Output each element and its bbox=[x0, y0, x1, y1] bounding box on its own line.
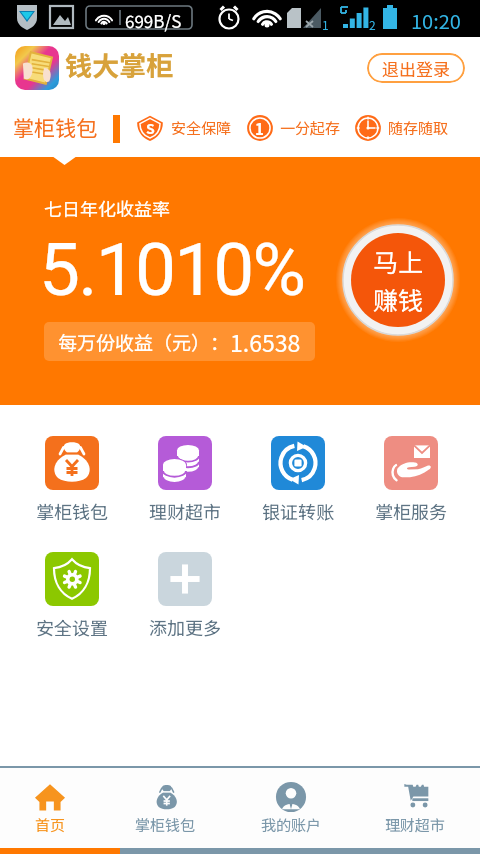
button[interactable]: 理财超市 bbox=[370, 768, 460, 836]
button[interactable]: 添加更多 bbox=[140, 552, 230, 640]
button[interactable]: 退出登录 bbox=[367, 53, 465, 83]
staticText: 掌柜钱包 bbox=[36, 498, 108, 524]
staticText: 退出登录 bbox=[382, 56, 450, 81]
staticText: 我的账户 bbox=[261, 814, 322, 836]
staticText: 1 bbox=[255, 118, 264, 140]
staticText: 5.1010% bbox=[39, 227, 305, 313]
staticText: 首页 bbox=[35, 814, 66, 836]
staticText: 10:20 bbox=[411, 6, 461, 35]
staticText: 添加更多 bbox=[149, 614, 221, 640]
button[interactable]: 安全设置 bbox=[27, 552, 117, 640]
staticText: 银证转账 bbox=[262, 498, 334, 524]
button[interactable]: 掌柜钱包 bbox=[120, 768, 210, 836]
staticText: 2 bbox=[369, 16, 376, 33]
button[interactable]: 掌柜服务 bbox=[366, 436, 456, 524]
staticText: 安全设置 bbox=[36, 614, 108, 640]
button[interactable]: App logo bbox=[15, 46, 59, 90]
staticText: 每万份收益（元）： bbox=[58, 328, 230, 356]
staticText: 理财超市 bbox=[149, 498, 221, 524]
staticText: 掌柜服务 bbox=[375, 498, 447, 524]
button[interactable]: 一分起存 bbox=[246, 113, 340, 143]
staticText: 1 bbox=[322, 16, 329, 33]
staticText: 赚钱 bbox=[373, 281, 424, 317]
staticText: 699B/S bbox=[125, 8, 182, 33]
button[interactable]: 随存随取 bbox=[354, 113, 448, 143]
button[interactable]: 我的账户 bbox=[246, 768, 336, 836]
staticText: 七日年化收益率 bbox=[44, 195, 170, 221]
button[interactable]: 理财超市 bbox=[140, 436, 230, 524]
staticText: S bbox=[146, 118, 155, 138]
staticText: 掌柜钱包 bbox=[135, 814, 196, 836]
button[interactable]: 掌柜钱包 bbox=[27, 436, 117, 524]
button[interactable]: 首页 bbox=[5, 768, 95, 836]
staticText: 钱大掌柜 bbox=[65, 45, 173, 84]
button[interactable]: 马上赚钱 bbox=[341, 223, 455, 337]
staticText: 理财超市 bbox=[385, 814, 446, 836]
button[interactable]: 掌柜钱包 bbox=[13, 112, 97, 142]
button[interactable]: 安全保障 bbox=[136, 113, 231, 143]
button[interactable]: 银证转账 bbox=[253, 436, 343, 524]
staticText: 安全保障 bbox=[171, 117, 231, 139]
staticText: 随存随取 bbox=[388, 117, 448, 139]
staticText: 马上 bbox=[373, 243, 424, 279]
staticText: 一分起存 bbox=[280, 117, 340, 139]
staticText: 1.6538 bbox=[230, 325, 301, 358]
